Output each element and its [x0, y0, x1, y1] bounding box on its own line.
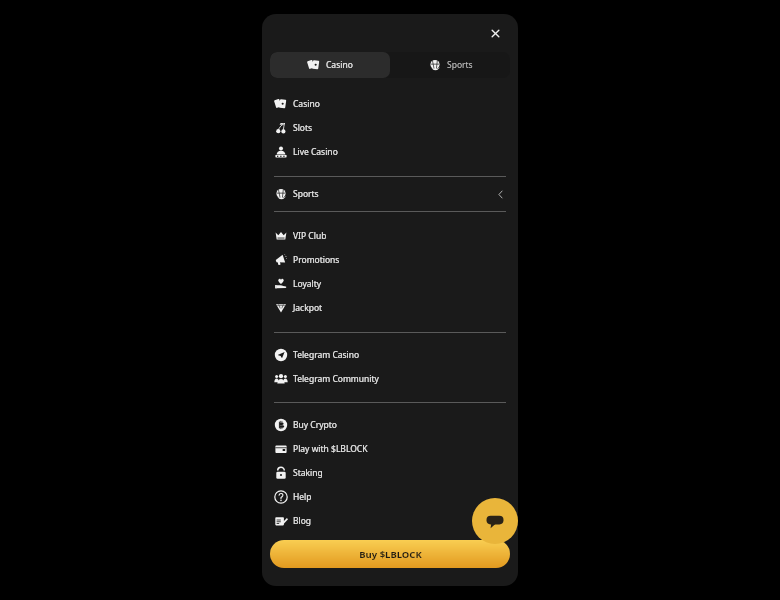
staticText: Loyalty: [293, 278, 322, 290]
button[interactable]: Loyalty: [274, 272, 506, 296]
button[interactable]: Casino: [270, 52, 390, 78]
button[interactable]: Sports: [390, 52, 510, 78]
staticText: Sports: [447, 59, 473, 71]
staticText: Buy Crypto: [293, 419, 337, 431]
button[interactable]: Close: [484, 22, 506, 44]
staticText: Play with $LBLOCK: [293, 443, 368, 455]
staticText: Promotions: [293, 254, 340, 266]
staticText: Casino: [293, 98, 320, 110]
button[interactable]: Casino: [274, 92, 506, 116]
button[interactable]: Jackpot: [274, 296, 506, 320]
staticText: Blog: [293, 515, 312, 527]
staticText: Live Casino: [293, 146, 338, 158]
button[interactable]: Sports: [274, 177, 506, 211]
staticText: Sports: [293, 188, 319, 200]
button[interactable]: Buy $LBLOCK: [270, 540, 510, 568]
button[interactable]: Live Casino: [274, 140, 506, 164]
staticText: Help: [293, 491, 312, 503]
staticText: Staking: [293, 467, 323, 479]
button[interactable]: VIP Club: [274, 224, 506, 248]
button[interactable]: Blog: [274, 509, 506, 533]
staticText: VIP Club: [293, 230, 327, 242]
button[interactable]: Slots: [274, 116, 506, 140]
button[interactable]: Telegram Community: [274, 367, 506, 391]
button[interactable]: Promotions: [274, 248, 506, 272]
button[interactable]: Buy Crypto: [274, 413, 506, 437]
staticText: Jackpot: [293, 302, 323, 314]
staticText: Slots: [293, 122, 313, 134]
staticText: Casino: [326, 59, 353, 71]
staticText: Buy $LBLOCK: [359, 548, 422, 561]
staticText: Telegram Community: [293, 373, 379, 385]
staticText: Telegram Casino: [293, 349, 360, 361]
button[interactable]: Help: [274, 485, 506, 509]
button[interactable]: Chat support: [472, 498, 518, 544]
button[interactable]: Staking: [274, 461, 506, 485]
button[interactable]: Play with $LBLOCK: [274, 437, 506, 461]
button[interactable]: Telegram Casino: [274, 343, 506, 367]
